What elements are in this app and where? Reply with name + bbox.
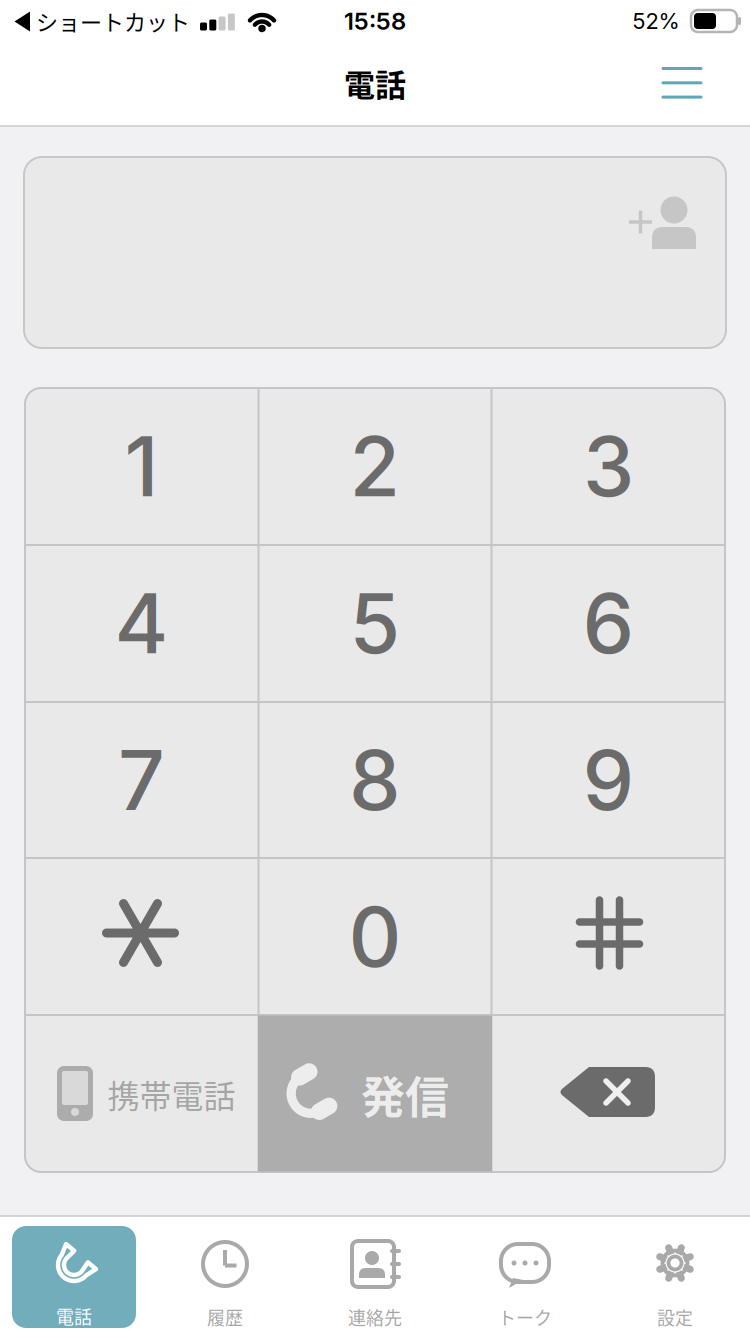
staticText: 履歴 [207, 1304, 243, 1330]
staticText: 携帯電話 [107, 1071, 235, 1117]
button[interactable]: トーク [455, 1216, 595, 1334]
staticText: 4 [114, 574, 168, 673]
button[interactable]: 0 [258, 859, 491, 1014]
button[interactable]: # [492, 859, 725, 1014]
button[interactable]: 携帯電話 [25, 1016, 258, 1171]
button[interactable]: 電話 [12, 1226, 136, 1328]
staticText: 15:58 [344, 6, 406, 35]
staticText: 0 [348, 887, 401, 987]
button[interactable]: Add to Contacts [619, 182, 709, 262]
button[interactable]: 5 [258, 546, 491, 701]
staticText: 発信 [361, 1063, 449, 1126]
button[interactable]: 履歴 [155, 1216, 295, 1334]
button[interactable]: 連絡先 [305, 1216, 445, 1334]
staticText: 9 [582, 731, 634, 830]
staticText: 6 [582, 574, 634, 673]
staticText: ショートカット [36, 5, 190, 37]
staticText: 52% [632, 8, 679, 34]
button[interactable]: * [25, 859, 258, 1014]
staticText: 2 [349, 417, 400, 516]
staticText: 7 [118, 731, 165, 830]
button[interactable]: Menu [649, 54, 713, 112]
staticText: 3 [583, 417, 634, 516]
button[interactable]: 設定 [605, 1216, 745, 1334]
staticText: 設定 [657, 1304, 693, 1330]
staticText: 電話 [344, 61, 406, 105]
button[interactable]: 6 [492, 546, 725, 701]
button[interactable]: 7 [25, 703, 258, 858]
button[interactable]: 2 [258, 389, 491, 544]
button[interactable]: 3 [492, 389, 725, 544]
staticText: トーク [498, 1304, 552, 1330]
staticText: 電話 [56, 1303, 92, 1329]
staticText: 1 [124, 417, 158, 516]
staticText: 8 [349, 731, 401, 830]
staticText: 連絡先 [348, 1304, 402, 1330]
button[interactable]: Delete [492, 1016, 725, 1171]
button[interactable]: 4 [25, 546, 258, 701]
button[interactable]: 8 [258, 703, 491, 858]
button[interactable]: 1 [25, 389, 258, 544]
button[interactable]: 9 [492, 703, 725, 858]
staticText: 5 [349, 574, 400, 673]
button[interactable]: 発信 [258, 1015, 492, 1171]
